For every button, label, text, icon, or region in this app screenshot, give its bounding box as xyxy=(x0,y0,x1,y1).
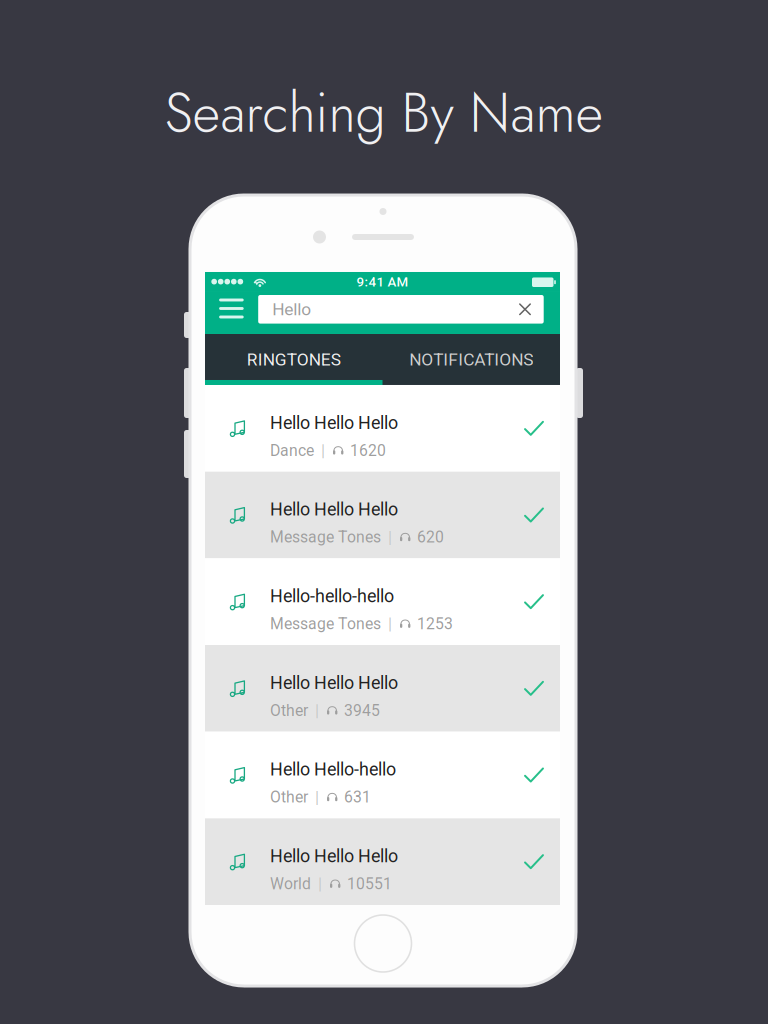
staticText: 9:41 AM xyxy=(356,274,408,290)
staticText: | xyxy=(315,787,319,807)
staticText: RINGTONES xyxy=(247,349,341,370)
button[interactable]: Hello Hello Hello xyxy=(205,818,560,905)
staticText: Hello Hello Hello xyxy=(270,499,398,520)
staticText: 1253 xyxy=(417,615,453,633)
button[interactable]: Hello Hello Hello xyxy=(205,385,560,472)
button[interactable]: Hello Hello-hello xyxy=(205,732,560,818)
staticText: 620 xyxy=(417,528,444,546)
button[interactable]: Hello Hello Hello xyxy=(205,472,560,558)
staticText: 1620 xyxy=(350,441,386,460)
staticText: | xyxy=(321,441,325,460)
staticText: 3945 xyxy=(344,701,380,720)
staticText: World xyxy=(270,875,311,893)
staticText: Hello Hello Hello xyxy=(270,412,398,433)
staticText: Dance xyxy=(270,441,314,460)
staticText: Other xyxy=(270,701,308,720)
button[interactable]: Menu xyxy=(205,289,258,327)
staticText: | xyxy=(388,614,392,634)
button[interactable]: NOTIFICATIONS xyxy=(382,337,560,382)
staticText: | xyxy=(318,874,322,894)
staticText: Hello-hello-hello xyxy=(270,586,394,607)
staticText: | xyxy=(315,701,319,720)
staticText: Hello Hello Hello xyxy=(270,846,398,867)
staticText: NOTIFICATIONS xyxy=(409,349,533,370)
staticText: Hello Hello-hello xyxy=(270,759,396,780)
staticText: Searching By Name xyxy=(164,74,603,152)
staticText: Hello Hello Hello xyxy=(270,672,398,693)
staticText: | xyxy=(388,527,392,547)
button[interactable]: Clear search xyxy=(258,295,544,324)
button[interactable]: Hello Hello Hello xyxy=(205,645,560,732)
staticText: Other xyxy=(270,788,308,806)
staticText: Hello xyxy=(272,299,311,319)
staticText: 10551 xyxy=(347,875,392,893)
staticText: Message Tones xyxy=(270,615,381,633)
staticText: Message Tones xyxy=(270,528,381,546)
button[interactable]: RINGTONES xyxy=(205,337,382,382)
button[interactable]: Hello-hello-hello xyxy=(205,558,560,645)
staticText: 631 xyxy=(344,788,371,806)
